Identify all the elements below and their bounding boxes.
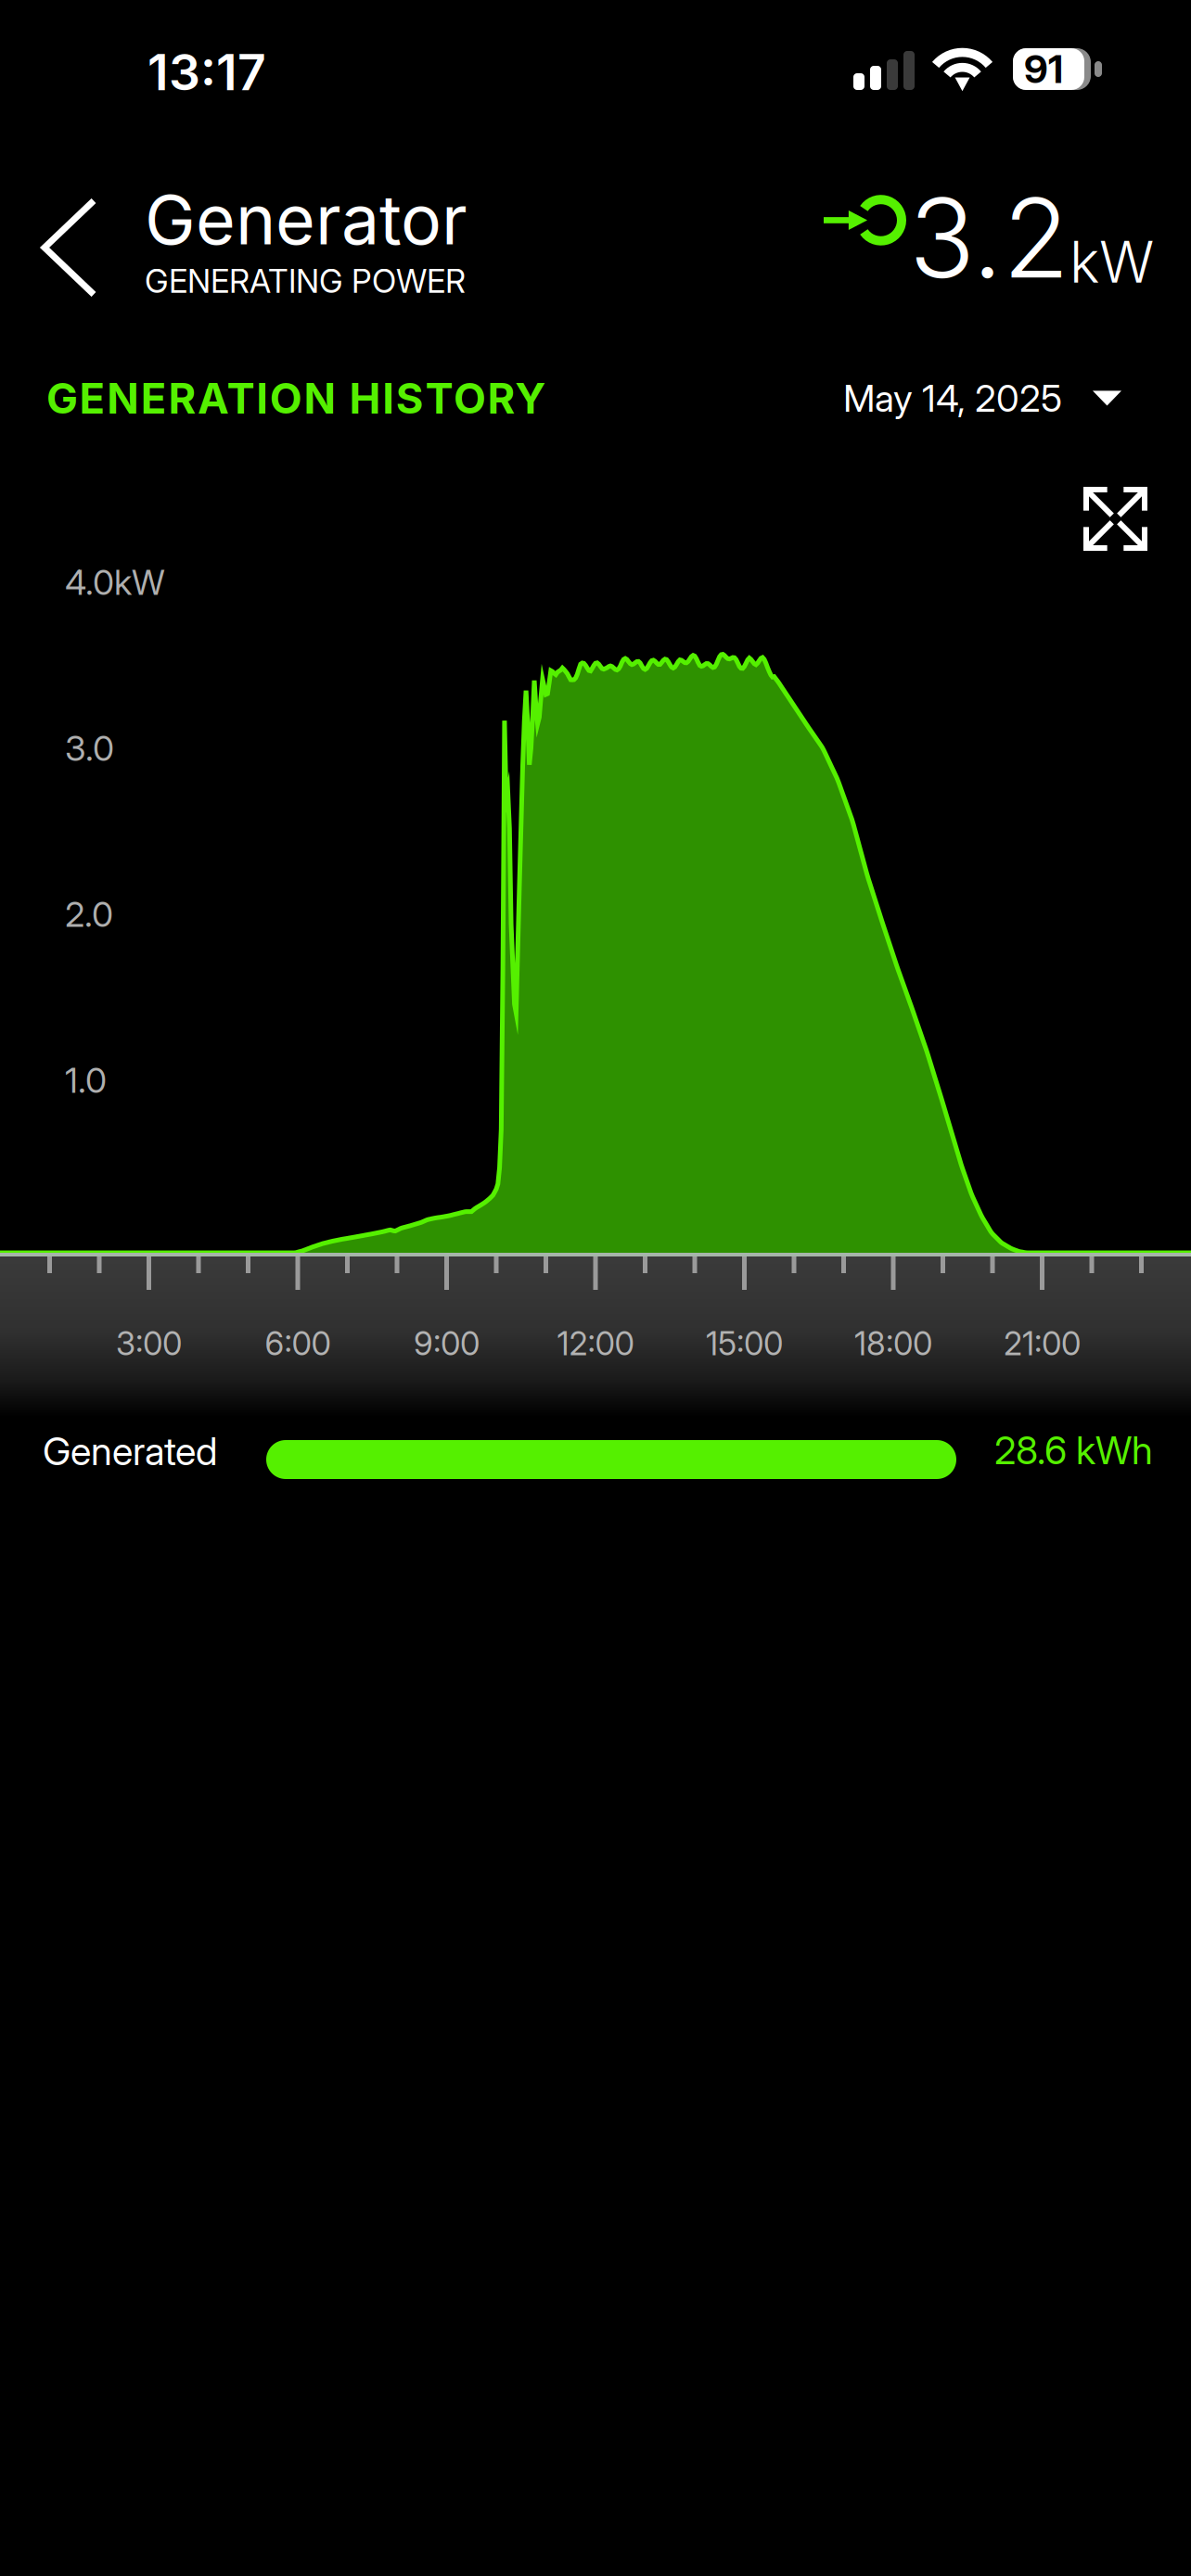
- staticText: 18:00: [854, 1324, 932, 1363]
- staticText: 6:00: [265, 1324, 331, 1363]
- staticText: 1.0: [65, 1059, 107, 1101]
- staticText: 21:00: [1004, 1324, 1081, 1363]
- staticText: 28.6 kWh: [994, 1427, 1153, 1473]
- staticText: Generator: [145, 179, 467, 261]
- button[interactable]: Full screen: [1086, 422, 1191, 548]
- staticText: 3:00: [116, 1324, 182, 1363]
- button[interactable]: Back: [0, 128, 145, 313]
- staticText: kW: [1069, 227, 1154, 296]
- staticText: 91: [1024, 46, 1063, 92]
- staticText: GENERATION HISTORY: [46, 373, 546, 424]
- staticText: Generated: [43, 1428, 217, 1474]
- staticText: 15:00: [706, 1324, 783, 1363]
- staticText: 3.0: [65, 727, 114, 769]
- staticText: May 14, 2025: [843, 376, 1062, 421]
- staticText: 12:00: [557, 1324, 634, 1363]
- staticText: 2.0: [65, 893, 113, 935]
- button[interactable]: May 14, 2025: [843, 376, 1191, 421]
- staticText: 9:00: [414, 1324, 480, 1363]
- staticText: 13:17: [147, 42, 266, 102]
- staticText: 4.0kW: [65, 561, 165, 603]
- staticText: GENERATING POWER: [145, 262, 466, 301]
- staticText: 3.2: [909, 172, 1069, 304]
